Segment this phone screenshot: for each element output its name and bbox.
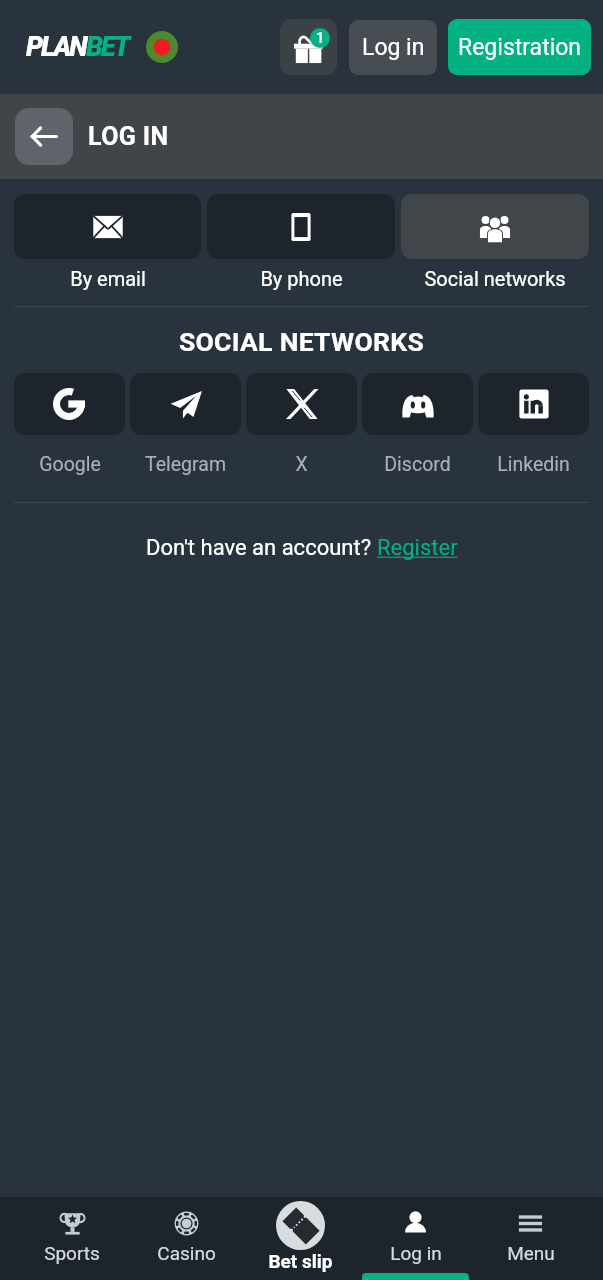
button[interactable]: Social networks <box>401 194 589 290</box>
staticText: LOG IN <box>88 122 169 151</box>
staticText: Menu <box>507 1242 555 1264</box>
button[interactable]: Back <box>15 108 73 165</box>
staticText: By email <box>70 267 146 290</box>
staticText: Discord <box>384 453 451 476</box>
staticText: Registration <box>458 34 582 61</box>
button[interactable]: By email <box>14 194 201 290</box>
staticText: Log in <box>362 34 425 61</box>
button[interactable]: Register <box>377 535 458 561</box>
button[interactable]: Casino <box>129 1197 243 1264</box>
button[interactable]: X <box>246 373 357 476</box>
staticText: Google <box>39 453 101 476</box>
button[interactable]: Bet slip <box>243 1197 358 1272</box>
staticText: BET <box>86 31 129 63</box>
button[interactable]: Log in <box>349 20 437 75</box>
staticText: 1 <box>316 30 325 47</box>
staticText: Casino <box>157 1242 216 1264</box>
staticText: By phone <box>260 267 343 290</box>
button[interactable]: Discord <box>362 373 473 476</box>
staticText: Bet slip <box>268 1250 333 1272</box>
staticText: PLAN <box>26 31 86 63</box>
staticText: Don't have an account? <box>146 535 377 561</box>
button[interactable]: Sports <box>15 1197 129 1264</box>
staticText: Sports <box>44 1242 100 1264</box>
staticText: Telegram <box>145 453 226 476</box>
staticText: Log in <box>390 1242 442 1264</box>
button[interactable]: Log in <box>358 1197 473 1264</box>
button[interactable]: Menu <box>473 1197 588 1264</box>
staticText: Social networks <box>424 267 566 290</box>
staticText: X <box>295 453 308 476</box>
button[interactable]: Google <box>14 373 125 476</box>
button[interactable]: Telegram <box>130 373 241 476</box>
button[interactable]: Registration <box>448 19 591 75</box>
button[interactable]: Bonuses <box>280 19 337 75</box>
staticText: SOCIAL NETWORKS <box>0 326 603 357</box>
button[interactable]: By phone <box>207 194 395 290</box>
button[interactable]: Linkedin <box>478 373 589 476</box>
staticText: Linkedin <box>497 453 570 476</box>
